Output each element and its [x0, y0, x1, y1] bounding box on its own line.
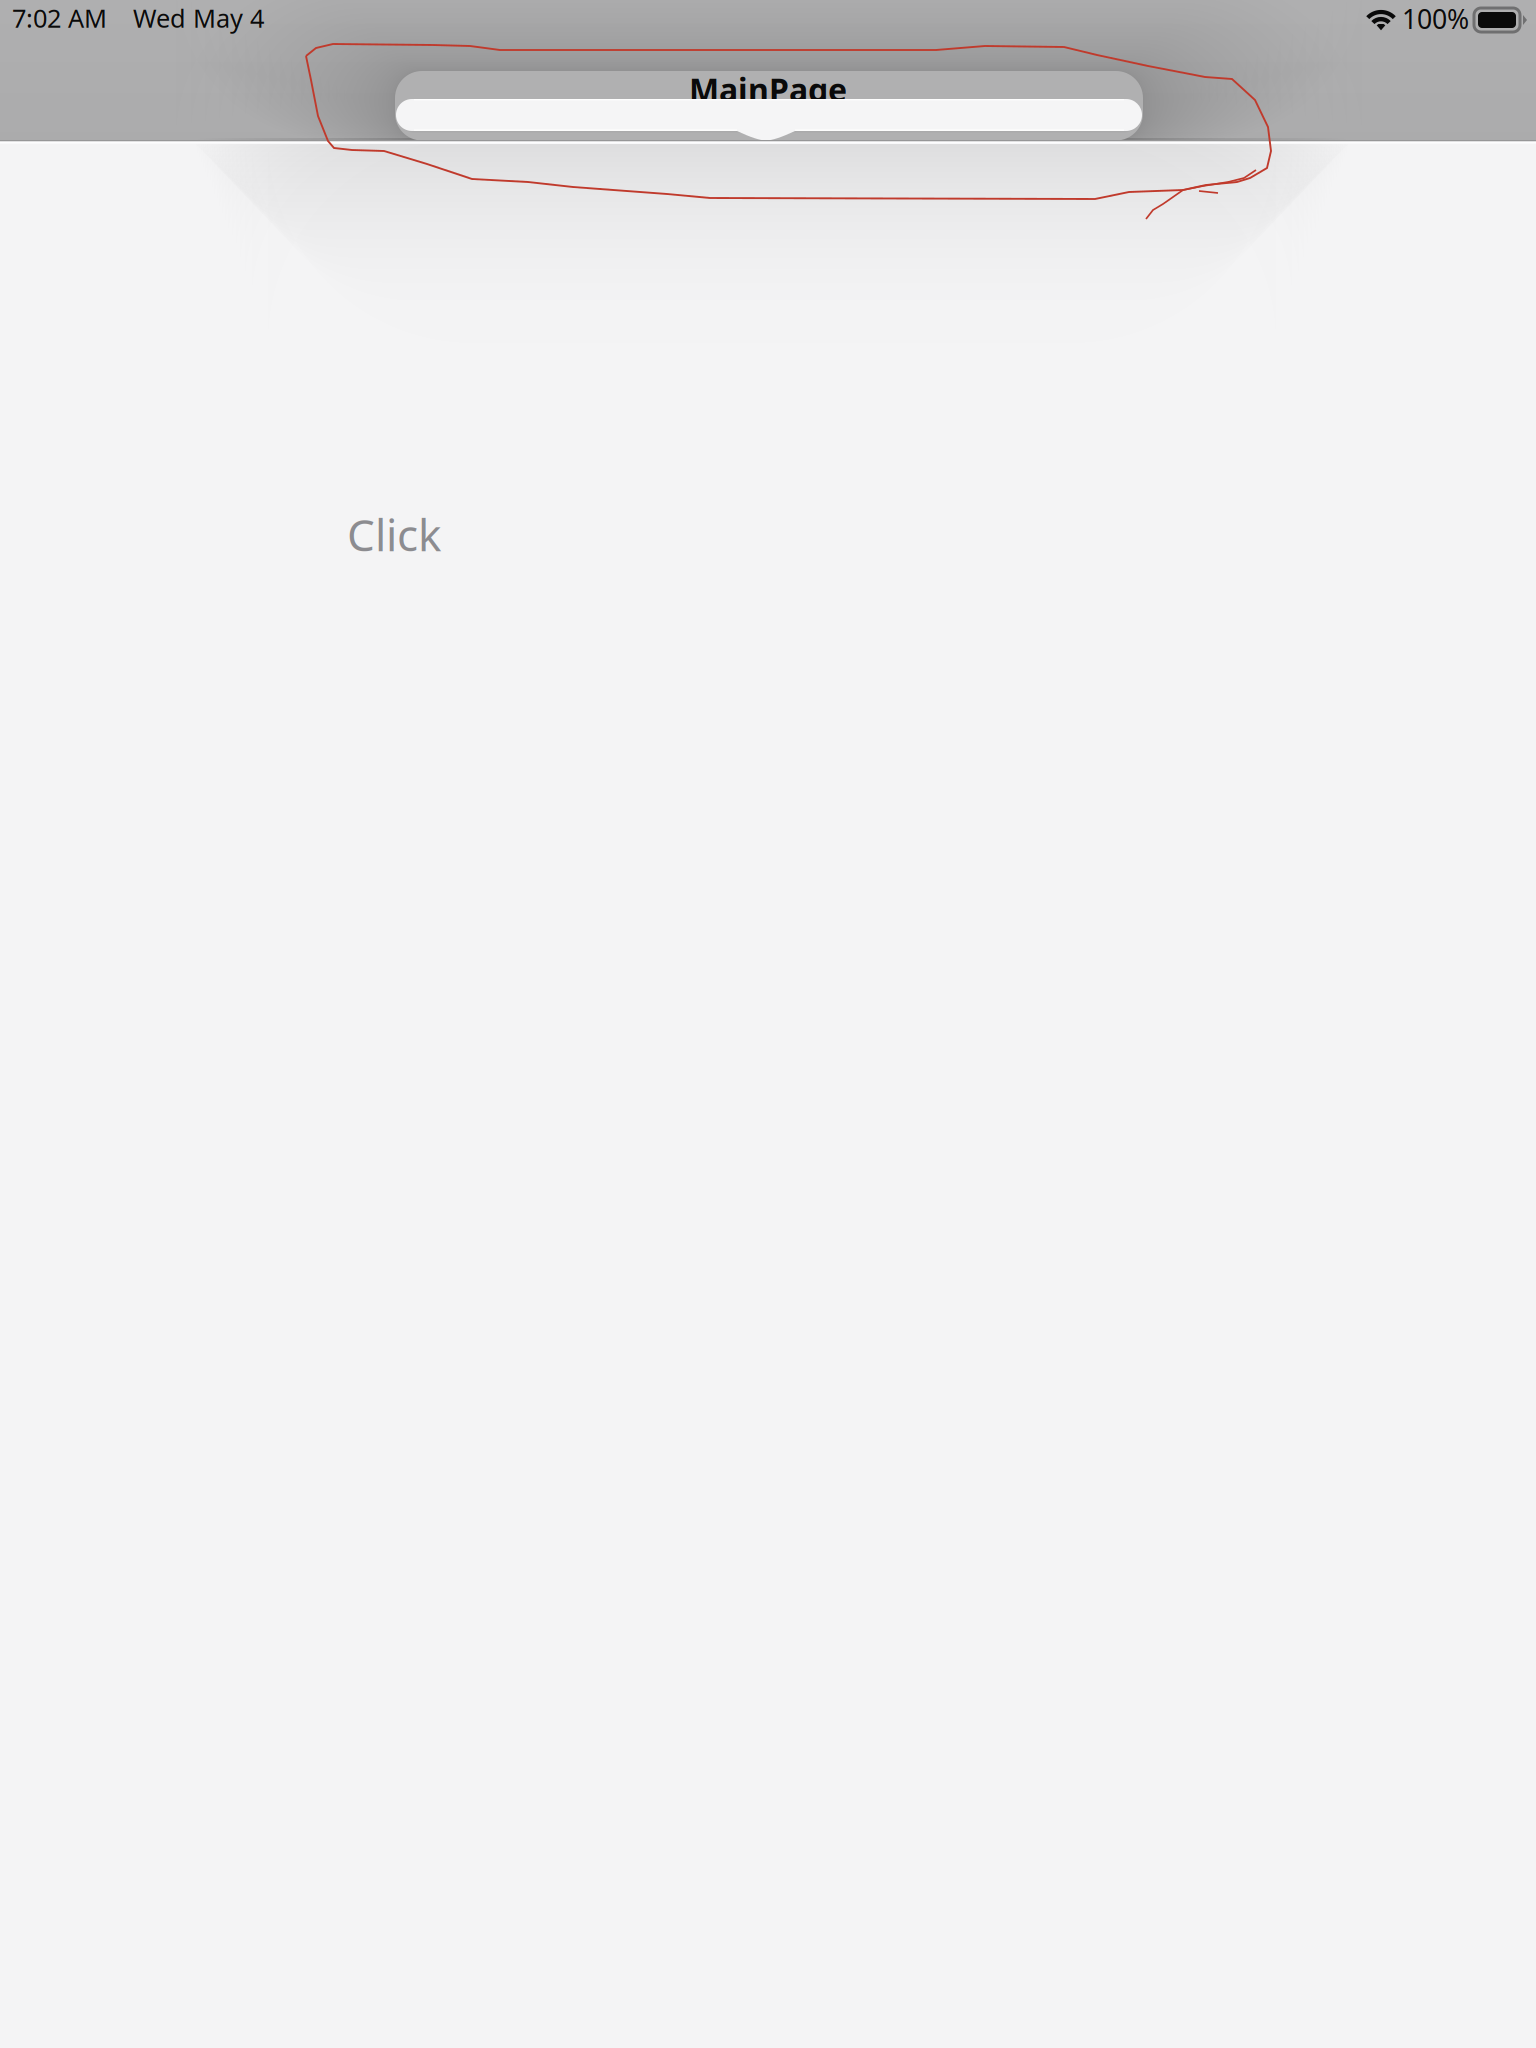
- staticText: Click: [347, 505, 441, 563]
- staticText: 100%: [1402, 1, 1469, 36]
- button[interactable]: Click: [0, 0, 1536, 2048]
- staticText: MainPage: [689, 68, 847, 110]
- staticText: Wed May 4: [133, 1, 264, 35]
- staticText: 7:02 AM: [12, 1, 107, 35]
